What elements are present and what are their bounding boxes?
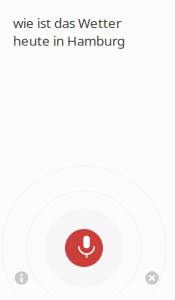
button[interactable]: Close — [145, 271, 159, 285]
staticText: heute in Hamburg — [13, 32, 125, 49]
staticText: wie ist das Wetter — [13, 14, 122, 32]
button[interactable]: Stop recording — [65, 229, 103, 267]
button[interactable]: Info — [14, 271, 28, 285]
